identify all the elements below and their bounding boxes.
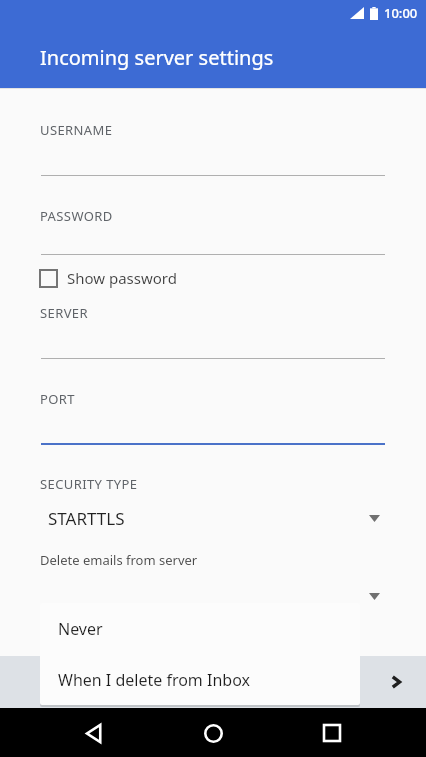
staticText: PASSWORD <box>40 207 113 225</box>
staticText: Incoming server settings <box>40 44 274 71</box>
staticText: 10:00 <box>384 4 418 22</box>
button[interactable]: Recents <box>308 709 356 757</box>
button[interactable]: Never <box>40 603 360 654</box>
staticText: Never <box>58 618 103 640</box>
button[interactable]: Show password <box>40 260 386 296</box>
staticText: Delete emails from server <box>40 551 198 569</box>
staticText: STARTTLS <box>48 507 125 530</box>
button[interactable]: Home <box>189 709 237 757</box>
button[interactable]: STARTTLS <box>0 501 426 535</box>
button[interactable] <box>0 579 426 613</box>
staticText: Show password <box>67 268 177 288</box>
staticText: SECURITY TYPE <box>40 475 138 493</box>
staticText: When I delete from Inbox <box>58 669 250 691</box>
staticText: SERVER <box>40 304 88 322</box>
button[interactable]: Next <box>366 656 426 708</box>
button[interactable]: Back <box>71 709 119 757</box>
button[interactable]: When I delete from Inbox <box>40 654 360 705</box>
staticText: USERNAME <box>40 121 113 139</box>
staticText: PORT <box>40 390 75 408</box>
